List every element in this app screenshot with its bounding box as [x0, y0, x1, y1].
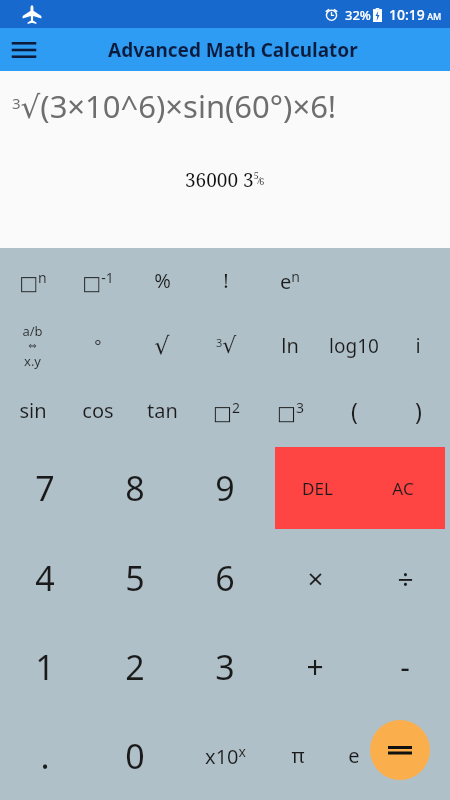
staticText: □3 — [277, 398, 304, 424]
button[interactable]: Minus — [360, 622, 450, 711]
button[interactable]: Percent — [130, 248, 194, 313]
staticText: × — [307, 559, 324, 597]
button[interactable]: Open navigation menu — [0, 28, 48, 71]
staticText: 2 — [125, 644, 145, 690]
staticText: e — [348, 742, 360, 769]
button[interactable]: x to the power n — [0, 248, 65, 313]
staticText: ⇔ — [28, 340, 37, 352]
staticText: log10 — [329, 333, 379, 359]
staticText: 7 — [35, 465, 55, 511]
staticText: √ — [154, 332, 170, 360]
button[interactable]: Multiply — [270, 533, 360, 622]
staticText: π — [291, 742, 305, 769]
button[interactable]: Tangent — [130, 378, 194, 443]
staticText: x.y — [24, 352, 41, 370]
button[interactable]: 9 — [180, 443, 270, 533]
staticText: a/b — [22, 322, 43, 340]
staticText: Advanced Math Calculator — [108, 37, 358, 63]
button[interactable]: Open parenthesis — [322, 378, 386, 443]
staticText: AC — [392, 477, 414, 500]
staticText: 36000 35⁄6 — [185, 167, 265, 193]
staticText: ! — [223, 267, 229, 294]
button[interactable]: Cube root — [194, 313, 258, 378]
button[interactable]: e to the power n — [258, 248, 322, 313]
staticText: ÷ — [397, 559, 414, 597]
button[interactable]: 2 — [90, 622, 180, 711]
staticText: 9 — [215, 465, 235, 511]
staticText: x10x — [205, 742, 246, 770]
staticText: 10:19 AM — [389, 5, 442, 24]
staticText: sin — [19, 397, 47, 424]
staticText: ( — [351, 395, 358, 426]
button[interactable]: 4 — [0, 533, 90, 622]
button[interactable]: 0 — [90, 711, 180, 800]
staticText: ° — [94, 334, 102, 357]
staticText: □n — [19, 268, 47, 294]
staticText: tan — [147, 397, 178, 424]
button[interactable]: Equals — [370, 720, 430, 780]
staticText: cos — [82, 397, 114, 424]
button[interactable]: 6 — [180, 533, 270, 622]
button[interactable]: Close parenthesis — [386, 378, 450, 443]
button[interactable]: Squared — [194, 378, 258, 443]
staticText: 5 — [125, 555, 145, 601]
button[interactable]: Fraction to decimal — [0, 313, 65, 378]
button[interactable]: Square root — [130, 313, 194, 378]
button[interactable]: AC — [360, 447, 445, 529]
staticText: + — [306, 646, 324, 687]
button[interactable]: Pi — [270, 711, 326, 800]
button[interactable]: 7 — [0, 443, 90, 533]
staticText: 0 — [125, 733, 145, 779]
button[interactable]: Divide — [360, 533, 450, 622]
button[interactable]: DEL — [275, 447, 360, 529]
staticText: i — [415, 332, 421, 359]
button[interactable]: Times ten to the power x — [180, 711, 270, 800]
button[interactable]: 8 — [90, 443, 180, 533]
button[interactable]: 3 — [180, 622, 270, 711]
staticText: ln — [281, 332, 299, 359]
button[interactable]: Decimal point — [0, 711, 90, 800]
staticText: . — [40, 733, 50, 779]
staticText: 8 — [125, 465, 145, 511]
staticText: 3√(3×10^6)×sin(60°)×6! — [12, 85, 337, 127]
staticText: en — [280, 267, 300, 295]
button[interactable]: Cosine — [65, 378, 130, 443]
button[interactable]: Sine — [0, 378, 65, 443]
button[interactable]: Reciprocal — [65, 248, 130, 313]
staticText: 32% — [345, 6, 371, 24]
staticText: 6 — [215, 555, 235, 601]
staticText: - — [400, 646, 410, 687]
button[interactable]: Degrees — [65, 313, 130, 378]
button[interactable]: 1 — [0, 622, 90, 711]
button[interactable]: 5 — [90, 533, 180, 622]
button[interactable]: Cubed — [258, 378, 322, 443]
button[interactable]: Natural logarithm — [258, 313, 322, 378]
button[interactable]: Factorial — [194, 248, 258, 313]
staticText: DEL — [302, 477, 333, 500]
staticText: ) — [415, 395, 422, 426]
staticText: 3 — [215, 644, 235, 690]
staticText: □2 — [213, 398, 240, 424]
button[interactable]: Imaginary unit — [386, 313, 450, 378]
button[interactable]: Log base 10 — [322, 313, 386, 378]
staticText: 3√ — [216, 333, 237, 359]
button[interactable]: Euler's number — [326, 711, 382, 800]
staticText: % — [154, 267, 171, 294]
button[interactable]: Plus — [270, 622, 360, 711]
staticText: 4 — [35, 555, 55, 601]
staticText: 1 — [35, 644, 55, 690]
staticText: □-1 — [82, 268, 114, 294]
